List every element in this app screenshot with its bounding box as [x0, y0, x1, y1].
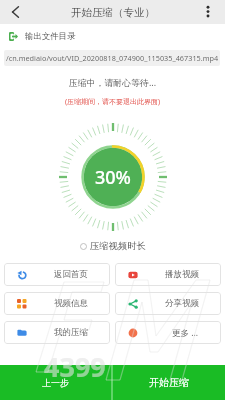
- staticText: 上一步: [42, 377, 69, 388]
- button[interactable]: More options: [195, 0, 225, 24]
- staticText: 开始压缩（专业）: [71, 6, 155, 19]
- staticText: 返回首页: [54, 269, 88, 280]
- staticText: (压缩期间，请不要退出此界面): [0, 97, 225, 107]
- button[interactable]: 上一步: [0, 365, 111, 400]
- staticText: 压缩中，请耐心等待...: [0, 76, 225, 88]
- button[interactable]: 更多 ...: [115, 321, 221, 344]
- staticText: 播放视频: [165, 269, 199, 280]
- staticText: 我的压缩: [54, 327, 88, 338]
- staticText: /cn.mediaio/vout/VID_20200818_074900_115…: [6, 53, 219, 63]
- staticText: 4399: [44, 348, 106, 385]
- staticText: 30%: [95, 165, 131, 190]
- button[interactable]: 视频信息: [4, 292, 110, 315]
- button[interactable]: 返回首页: [4, 263, 110, 286]
- button[interactable]: 压缩视频时长: [80, 240, 146, 252]
- staticText: 压缩视频时长: [90, 240, 146, 252]
- button[interactable]: 我的压缩: [4, 321, 110, 344]
- button[interactable]: 开始压缩: [113, 365, 225, 400]
- staticText: 输出文件目录: [25, 31, 76, 42]
- button[interactable]: 播放视频: [115, 263, 221, 286]
- button[interactable]: 分享视频: [115, 292, 221, 315]
- staticText: 分享视频: [165, 298, 199, 309]
- button[interactable]: Back: [0, 0, 30, 24]
- staticText: 开始压缩: [149, 376, 189, 389]
- staticText: 视频信息: [54, 298, 88, 309]
- staticText: 更多 ...: [172, 327, 199, 339]
